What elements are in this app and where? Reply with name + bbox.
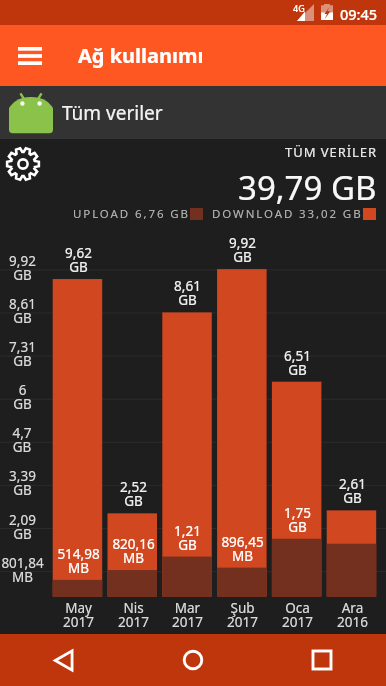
staticText: Nis 2017	[118, 599, 149, 631]
staticText: May 2017	[63, 599, 94, 631]
staticText: Şub 2017	[227, 599, 258, 631]
staticText: UPLOAD 6,76 GB	[73, 206, 190, 222]
staticText: 6,51 GB	[284, 347, 311, 379]
staticText: TÜM VERİLER	[285, 143, 377, 161]
staticText: 8,61 GB	[9, 295, 36, 327]
staticText: 4,7 GB	[12, 424, 32, 456]
staticText: 9,62 GB	[65, 244, 92, 276]
staticText: 820,16 MB	[112, 535, 155, 567]
staticText: Ağ kullanımı	[78, 42, 204, 69]
staticText: 39,79 GB	[238, 165, 377, 205]
staticText: 6 GB	[13, 381, 32, 413]
staticText: 9,92 GB	[9, 252, 36, 284]
staticText: Tüm veriler	[62, 100, 163, 126]
button[interactable]: Back	[0, 634, 128, 686]
staticText: 2,61 GB	[339, 475, 366, 507]
staticText: Ara 2016	[337, 599, 368, 631]
staticText: 801,84 MB	[1, 554, 44, 586]
staticText: 1,21 GB	[174, 522, 201, 554]
staticText: 3,39 GB	[9, 467, 36, 499]
button[interactable]: Tüm veriler	[0, 86, 386, 139]
staticText: 2,09 GB	[9, 511, 36, 543]
staticText: 514,98 MB	[57, 545, 100, 577]
staticText: 2,52 GB	[120, 478, 147, 510]
staticText: 8,61 GB	[174, 277, 201, 309]
button[interactable]: Home	[128, 634, 257, 686]
staticText: 7,31 GB	[9, 338, 36, 370]
staticText: 09:45	[340, 4, 378, 24]
staticText: Mar 2017	[172, 599, 203, 631]
staticText: 896,45 MB	[221, 533, 264, 565]
staticText: 4G	[293, 2, 305, 14]
button[interactable]: Recent apps	[257, 634, 386, 686]
button[interactable]: Settings	[3, 144, 43, 184]
staticText: 9,92 GB	[229, 234, 256, 266]
staticText: Oca 2017	[282, 599, 313, 631]
staticText: DOWNLOAD 33,02 GB	[212, 206, 363, 222]
staticText: 1,75 GB	[284, 504, 311, 536]
button[interactable]: Open navigation menu	[0, 26, 60, 86]
